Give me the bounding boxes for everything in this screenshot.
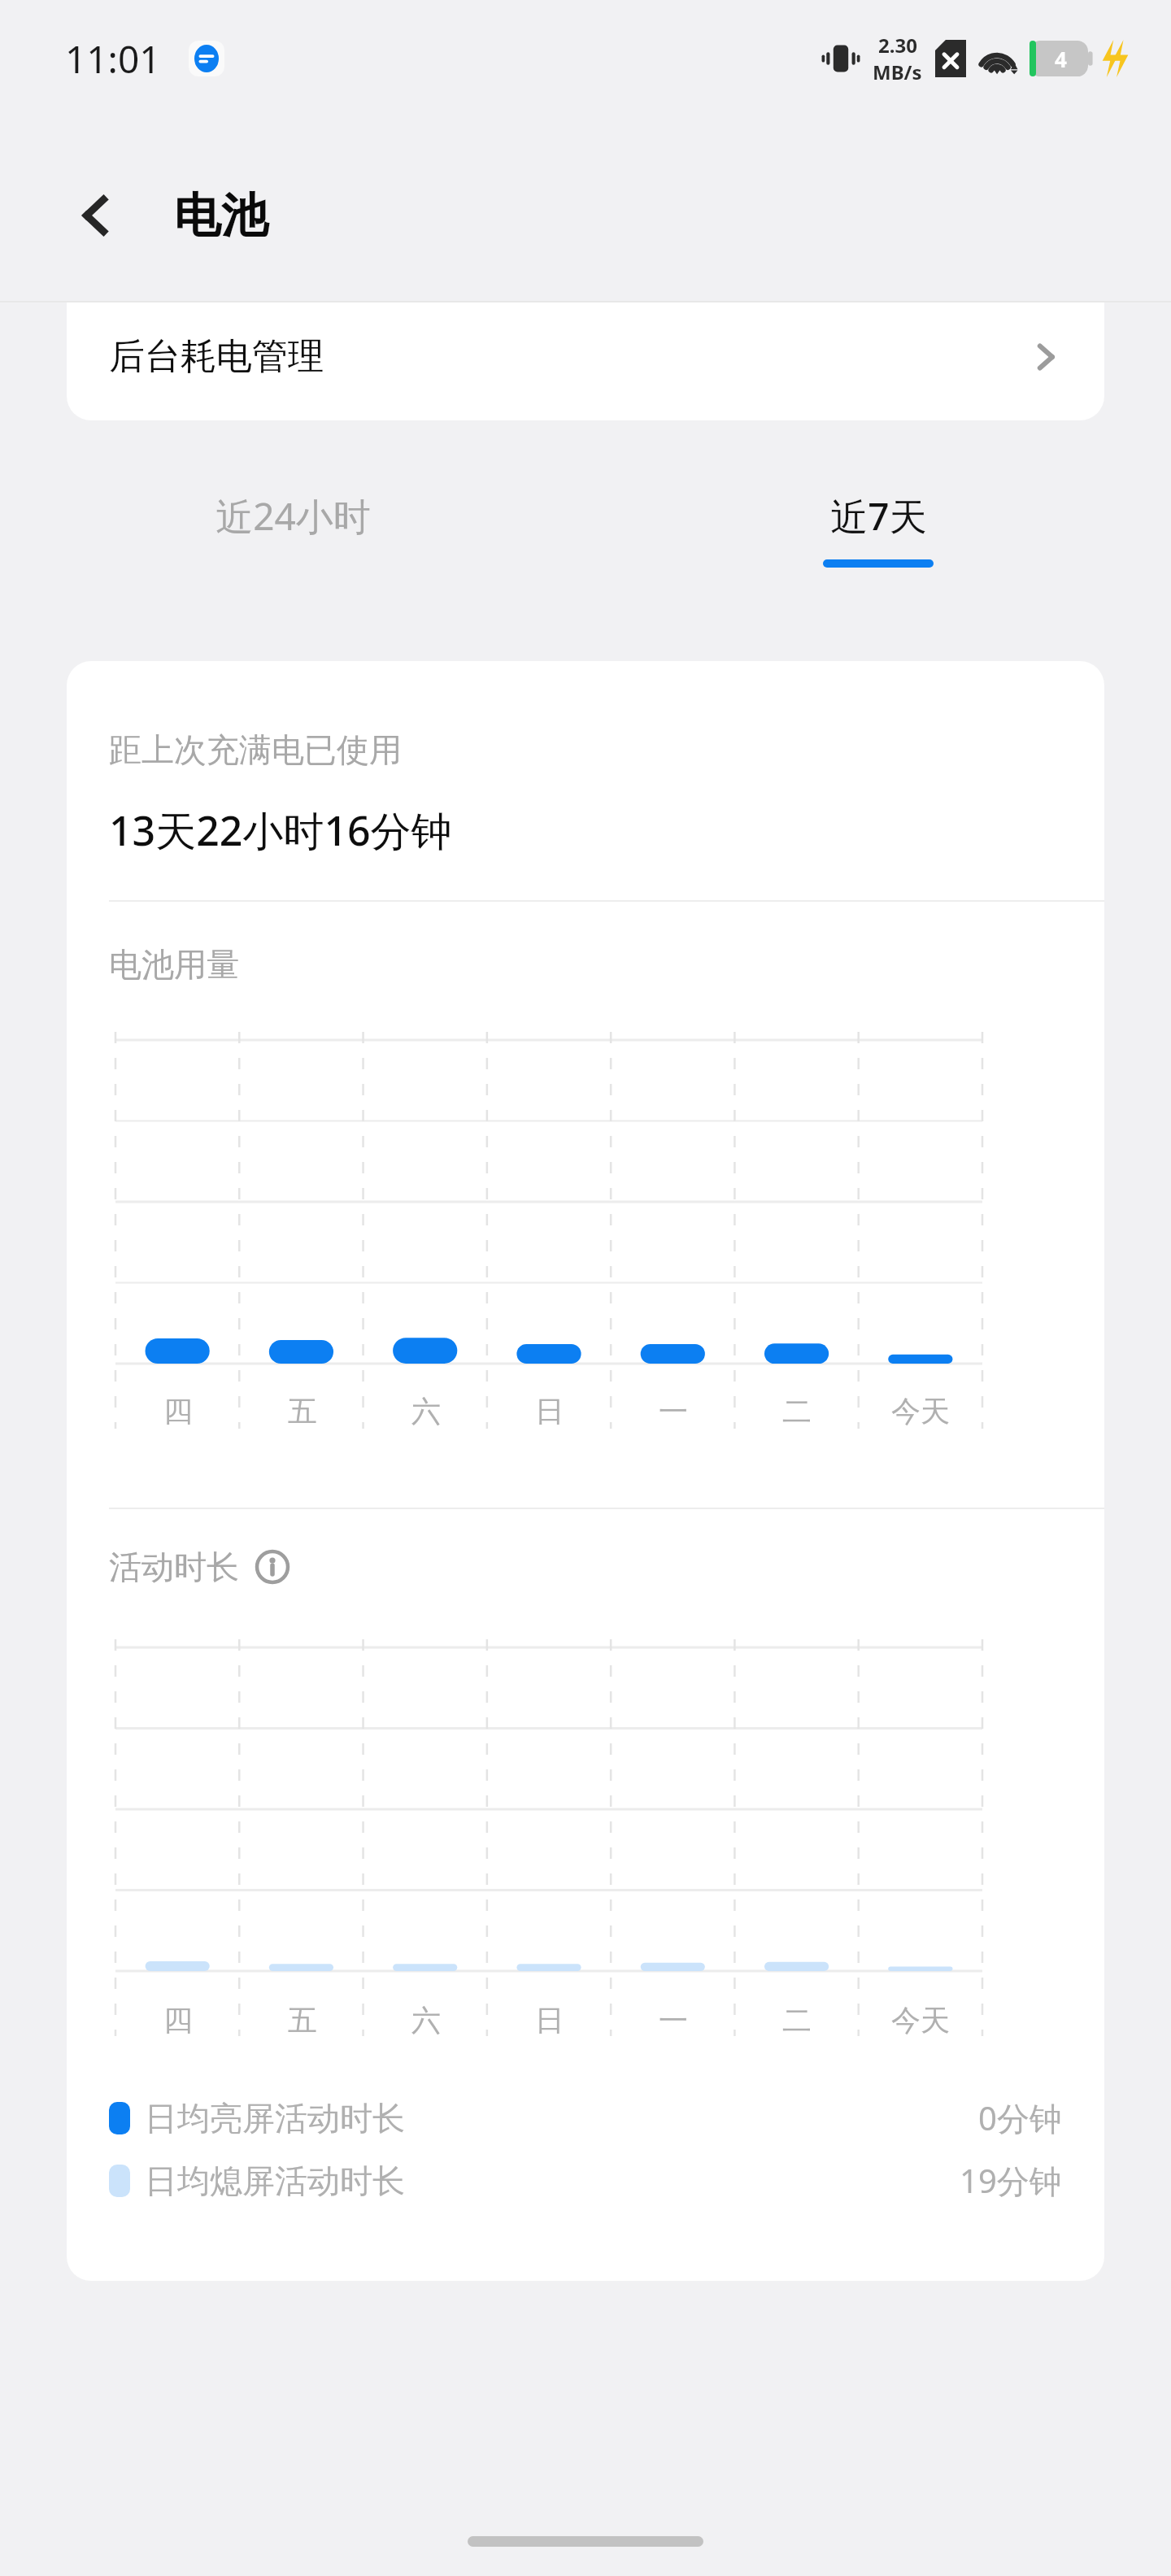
staticText: 4 — [1055, 45, 1067, 73]
staticText: 2.30 — [878, 32, 917, 59]
staticText: 二 — [782, 1393, 812, 1429]
staticText: 一 — [659, 2002, 688, 2039]
staticText: 11:01 — [65, 33, 161, 85]
staticText: 近24小时 — [215, 490, 371, 542]
staticText: 五 — [288, 2002, 317, 2039]
staticText: 近7天 — [830, 490, 927, 542]
staticText: 距上次充满电已使用 — [109, 729, 402, 770]
staticText: 一 — [659, 1393, 688, 1429]
staticText: 五 — [288, 1393, 317, 1429]
staticText: 日均熄屏活动时长 — [145, 2160, 405, 2201]
staticText: 日 — [535, 1393, 564, 1429]
staticText: 0分钟 — [978, 2095, 1062, 2140]
staticText: 四 — [163, 1393, 193, 1429]
button[interactable]: 后台耗电管理 — [67, 302, 1104, 420]
staticText: 13天22小时16分钟 — [109, 803, 452, 858]
staticText: 六 — [411, 1393, 441, 1429]
staticText: 今天 — [891, 1393, 950, 1429]
staticText: 后台耗电管理 — [109, 334, 324, 379]
staticText: 日均亮屏活动时长 — [145, 2098, 405, 2139]
staticText: 19分钟 — [960, 2158, 1062, 2203]
staticText: 电池用量 — [109, 944, 239, 985]
staticText: 六 — [411, 2002, 441, 2039]
staticText: MB/s — [873, 59, 922, 85]
button[interactable]: 近7天 — [585, 490, 1171, 568]
staticText: 二 — [782, 2002, 812, 2039]
staticText: 电池 — [174, 186, 268, 246]
staticText: 日 — [535, 2002, 564, 2039]
button[interactable]: 说明 — [254, 1548, 291, 1586]
button[interactable]: 返回 — [57, 176, 135, 255]
staticText: 四 — [163, 2002, 193, 2039]
staticText: 活动时长 — [109, 1547, 239, 1587]
staticText: 今天 — [891, 2002, 950, 2039]
button[interactable]: 近24小时 — [0, 490, 585, 568]
